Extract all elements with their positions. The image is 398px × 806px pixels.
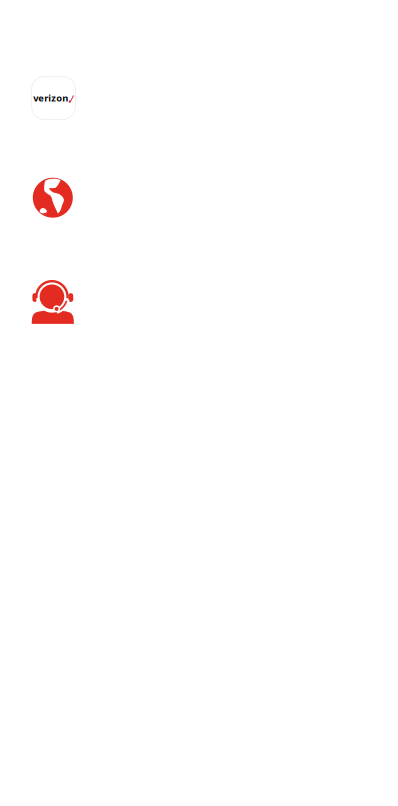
button[interactable]: Contact us xyxy=(32,281,74,324)
button[interactable]: International services xyxy=(33,178,73,218)
staticText: verizon xyxy=(33,92,68,104)
button[interactable]: My Verizon xyxy=(31,76,75,119)
